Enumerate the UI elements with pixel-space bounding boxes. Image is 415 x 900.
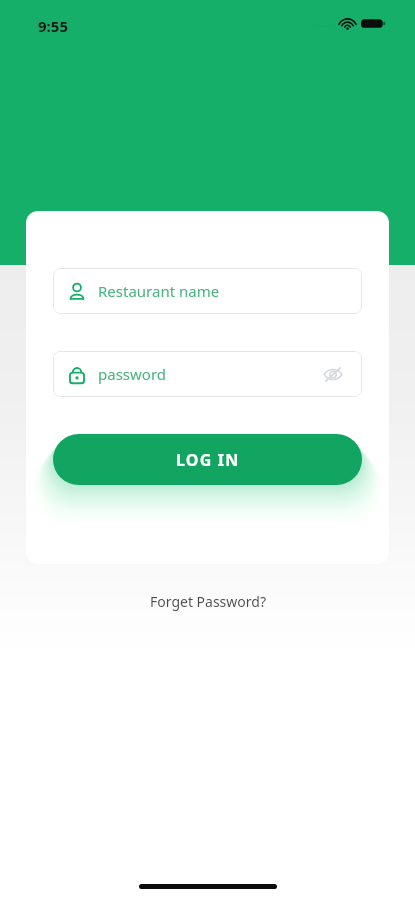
- staticText: LOG IN: [176, 449, 240, 471]
- staticText: 9:55: [38, 16, 68, 36]
- button[interactable]: Forget Password?: [140, 588, 276, 615]
- staticText: Forget Password?: [150, 592, 266, 611]
- staticText: password: [98, 364, 166, 384]
- button[interactable]: Restaurant name: [53, 268, 362, 314]
- button[interactable]: password: [53, 351, 362, 397]
- staticText: Restaurant name: [98, 281, 220, 301]
- button[interactable]: Show password: [320, 361, 346, 387]
- button[interactable]: LOG IN: [53, 434, 362, 485]
